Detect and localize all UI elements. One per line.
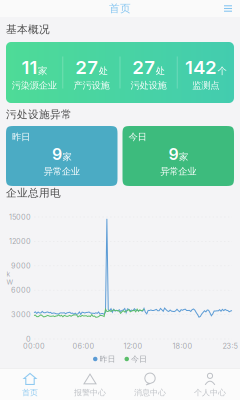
staticText: 9 — [52, 144, 62, 164]
staticText: 个人中心 — [194, 387, 226, 398]
staticText: 首页 — [109, 2, 131, 15]
staticText: 污处设施异常 — [6, 108, 72, 121]
staticText: 污染源企业 — [12, 79, 57, 91]
staticText: 监测点 — [192, 79, 219, 91]
staticText: 处 — [156, 65, 165, 77]
button[interactable]: 今日 — [122, 126, 234, 186]
staticText: 家 — [62, 151, 71, 163]
staticText: 异常企业 — [44, 165, 80, 177]
button[interactable]: 消息中心 — [120, 367, 180, 400]
staticText: 142 — [185, 56, 217, 78]
button[interactable]: 首页 — [0, 367, 60, 400]
staticText: 消息中心 — [134, 387, 166, 398]
button[interactable]: 报警中心 — [60, 367, 120, 400]
staticText: 首页 — [22, 387, 38, 398]
staticText: 污处设施 — [131, 79, 167, 91]
staticText: 报警中心 — [74, 387, 106, 398]
staticText: 产污设施 — [73, 79, 109, 91]
staticText: 00:00 — [23, 342, 45, 350]
staticText: 12000 — [9, 237, 31, 246]
button[interactable]: 个人中心 — [180, 367, 240, 400]
staticText: 18:00 — [172, 342, 192, 350]
staticText: 3000 — [11, 310, 31, 319]
staticText: 基本概况 — [6, 23, 50, 36]
staticText: 今日 — [131, 354, 147, 364]
staticText: 9 — [168, 144, 178, 164]
staticText: 15000 — [9, 213, 31, 221]
staticText: 异常企业 — [160, 165, 196, 177]
staticText: k W — [6, 270, 13, 286]
staticText: 12:00 — [123, 342, 142, 350]
staticText: 23:5 — [222, 342, 237, 350]
staticText: 11 — [21, 56, 37, 78]
staticText: 今日 — [128, 131, 146, 143]
staticText: 27 — [132, 56, 155, 78]
staticText: 6000 — [11, 286, 31, 295]
button[interactable]: 菜单 — [221, 1, 235, 15]
staticText: 企业总用电 — [6, 186, 61, 200]
staticText: 家 — [38, 65, 47, 77]
staticText: 昨日 — [12, 131, 30, 143]
staticText: 27 — [75, 56, 98, 78]
staticText: 0 — [26, 335, 31, 343]
staticText: 个 — [217, 65, 226, 77]
staticText: 处 — [99, 65, 108, 77]
staticText: 06:00 — [72, 342, 94, 350]
staticText: 昨日 — [99, 354, 115, 364]
button[interactable]: 昨日 — [6, 126, 117, 186]
staticText: 9000 — [11, 261, 31, 270]
staticText: 家 — [179, 151, 188, 163]
